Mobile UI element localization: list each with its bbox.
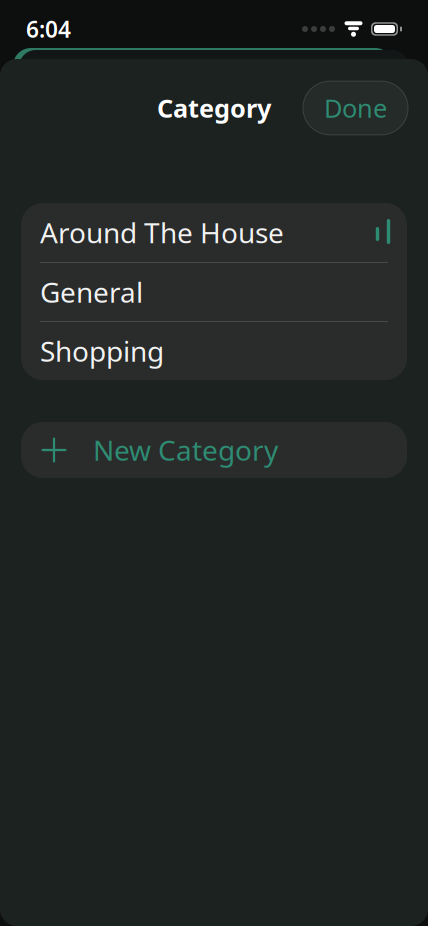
button[interactable]: Around The House <box>21 203 407 262</box>
staticText: Shopping <box>40 332 164 370</box>
staticText: New Category <box>93 431 278 469</box>
staticText: Around The House <box>40 214 284 251</box>
button[interactable]: Shopping <box>21 322 407 380</box>
button[interactable]: Done <box>303 81 408 135</box>
staticText: Category <box>157 91 271 125</box>
button[interactable]: New Category <box>21 422 407 478</box>
button[interactable]: General <box>21 263 407 321</box>
staticText: General <box>40 273 143 311</box>
staticText: Done <box>324 91 387 125</box>
staticText: 6:04 <box>26 14 71 44</box>
